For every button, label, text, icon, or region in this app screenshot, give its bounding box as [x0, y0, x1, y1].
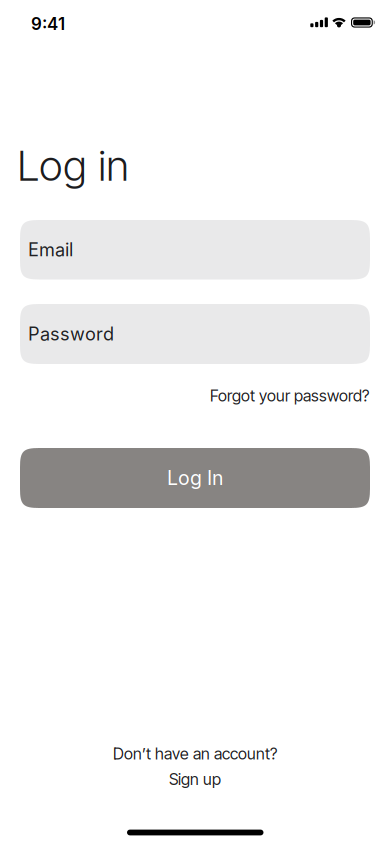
staticText: 9:41 — [31, 14, 65, 34]
staticText: Don’t have an account? — [113, 744, 277, 763]
staticText: Log In — [167, 466, 223, 490]
staticText: Forgot your password? — [210, 386, 369, 405]
button[interactable]: Log In — [20, 448, 370, 508]
button[interactable]: Sign up — [169, 769, 221, 789]
button[interactable]: Email — [20, 220, 370, 279]
button[interactable]: Password — [20, 304, 370, 364]
staticText: Email — [28, 239, 73, 261]
staticText: Password — [28, 323, 114, 345]
staticText: Sign up — [169, 769, 221, 789]
button[interactable]: Forgot your password? — [210, 386, 369, 405]
staticText: Log in — [17, 140, 129, 191]
